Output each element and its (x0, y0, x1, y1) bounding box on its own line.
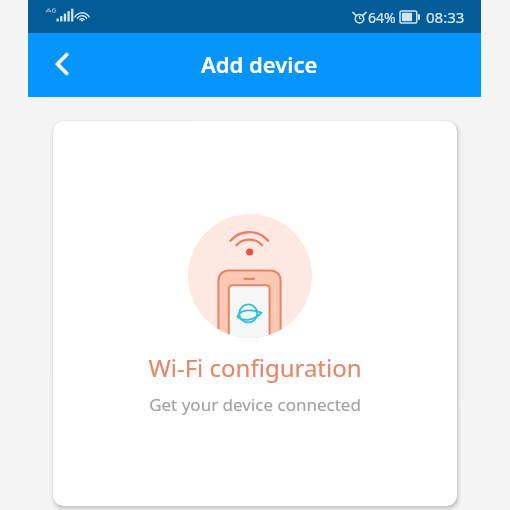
button[interactable]: Back (40, 43, 84, 87)
staticText: 08:33 (426, 7, 465, 27)
button[interactable]: Wi-Fi configuration (53, 121, 457, 506)
staticText: Wi-Fi configuration (148, 351, 362, 384)
staticText: 64% (368, 8, 396, 27)
staticText: Add device (201, 49, 318, 79)
staticText: Get your device connected (149, 393, 361, 416)
